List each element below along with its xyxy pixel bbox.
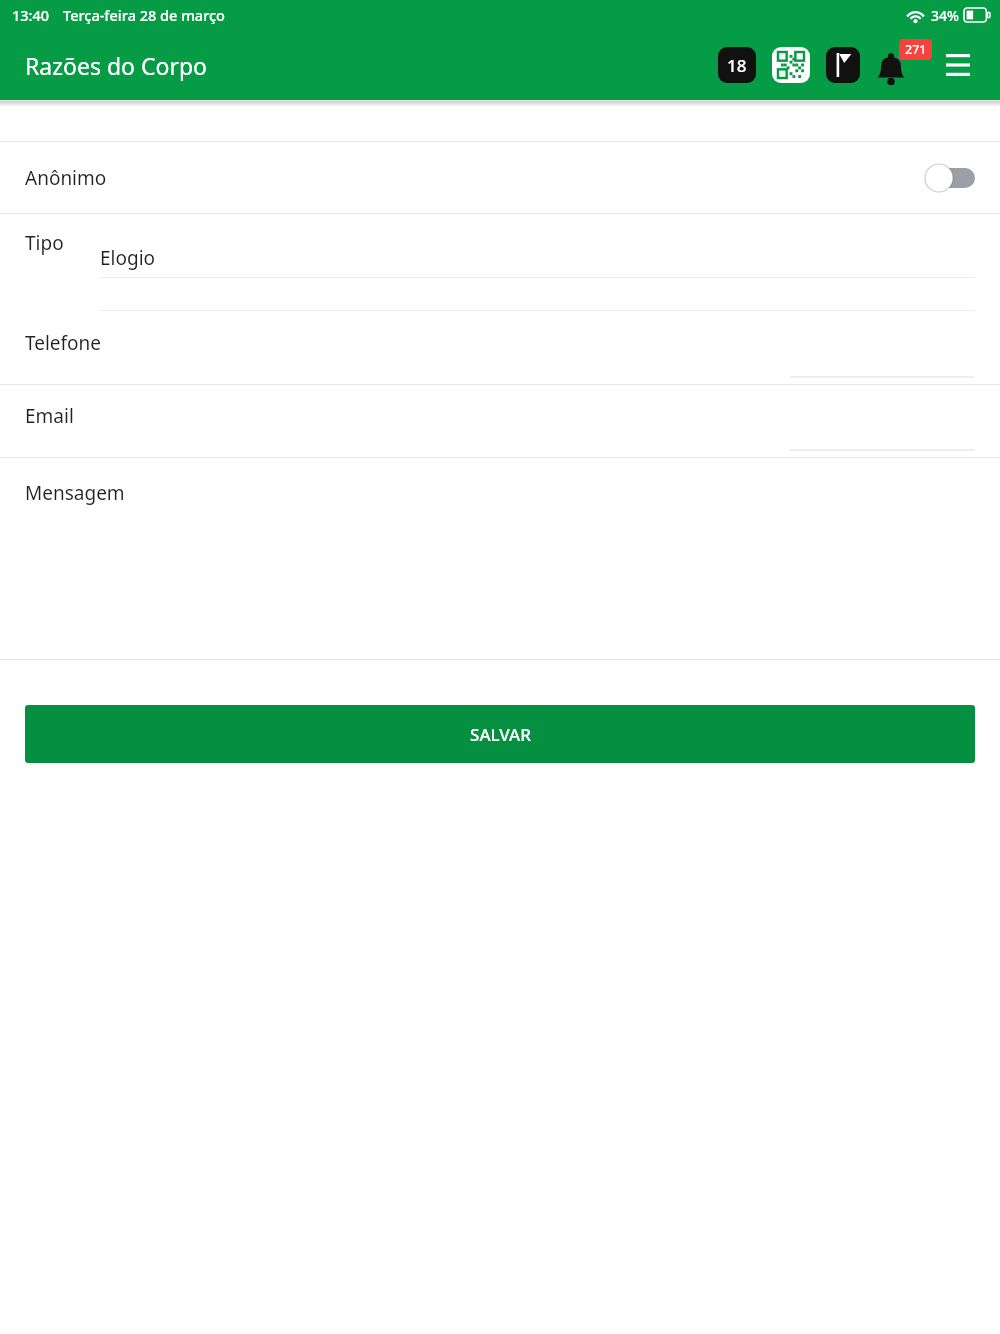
staticText: 13:40 — [12, 5, 50, 25]
staticText: Email — [25, 403, 74, 429]
button[interactable]: Idade 18 — [718, 47, 756, 83]
staticText: Anônimo — [25, 165, 107, 191]
staticText: Terça-feira 28 de março — [63, 5, 225, 25]
button[interactable]: Telefone — [0, 312, 1000, 384]
staticText: Razões do Corpo — [25, 50, 207, 81]
staticText: 34% — [931, 6, 959, 25]
staticText: Telefone — [25, 330, 102, 356]
button[interactable]: Menu — [940, 45, 976, 85]
staticText: 271 — [905, 41, 927, 58]
button[interactable]: Mensagem — [0, 458, 1000, 659]
staticText: 18 — [727, 54, 747, 77]
staticText: Tipo — [25, 230, 64, 256]
button[interactable]: Ler QR Code — [772, 47, 810, 83]
staticText: Elogio — [100, 245, 156, 271]
button[interactable]: Bandeira — [826, 47, 860, 83]
staticText: Mensagem — [25, 480, 125, 506]
button[interactable]: Notificações 271 — [874, 41, 932, 89]
staticText: SALVAR — [470, 723, 531, 746]
button[interactable]: Tipo — [0, 214, 1000, 300]
button[interactable]: Email — [0, 385, 1000, 457]
button[interactable]: SALVAR — [25, 705, 975, 763]
button[interactable]: Anônimo — [0, 142, 1000, 213]
